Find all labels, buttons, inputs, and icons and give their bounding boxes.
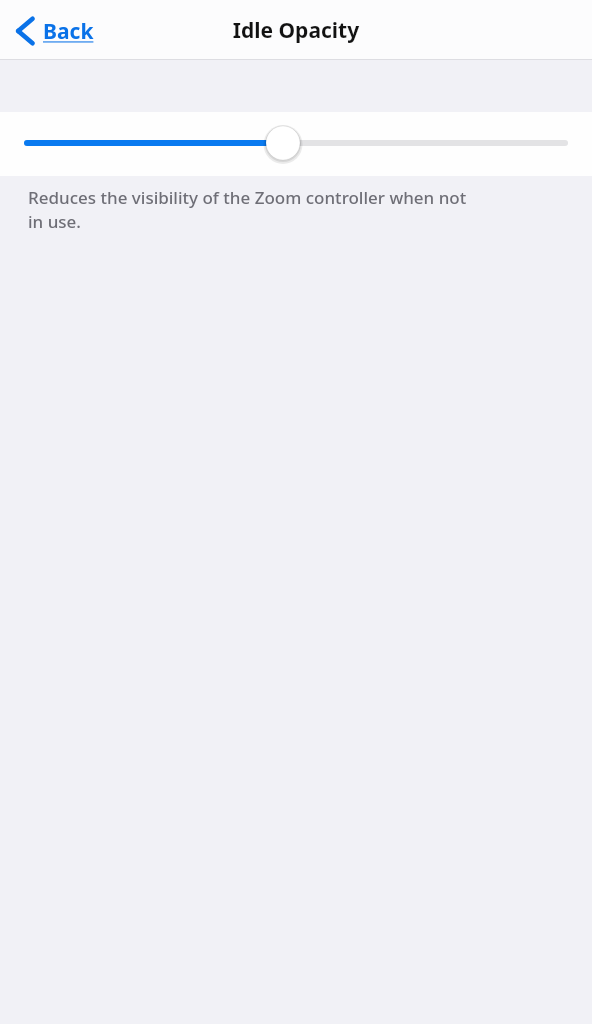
button[interactable]: Idle opacity slider [0, 112, 592, 176]
staticText: Idle Opacity [0, 16, 592, 45]
staticText: Reduces the visibility of the Zoom contr… [28, 186, 467, 233]
button[interactable]: Back [10, 4, 114, 56]
staticText: Back [43, 17, 94, 46]
